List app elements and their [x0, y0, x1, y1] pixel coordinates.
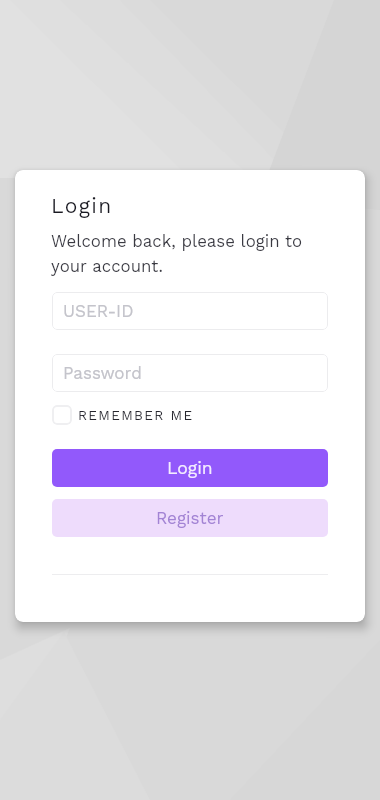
button[interactable]: USER-ID — [52, 292, 328, 330]
staticText: Register — [156, 508, 224, 528]
staticText: Login — [167, 458, 213, 479]
staticText: REMEMBER ME — [78, 407, 194, 423]
button[interactable]: REMEMBER ME — [52, 405, 194, 425]
button[interactable]: Login — [52, 449, 328, 487]
staticText: Login — [51, 193, 113, 218]
button[interactable]: Password — [52, 354, 328, 392]
button[interactable]: Register — [52, 499, 328, 537]
staticText: Password — [63, 363, 142, 383]
staticText: USER-ID — [63, 301, 134, 321]
staticText: Welcome back, please login to your accou… — [51, 231, 323, 276]
